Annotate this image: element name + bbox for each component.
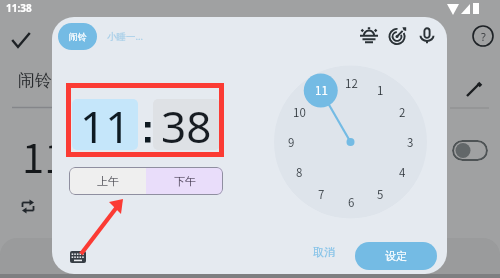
staticText: 5 — [377, 186, 384, 203]
button[interactable]: 1 — [368, 80, 392, 100]
button[interactable]: Sunrise alarm — [357, 25, 381, 49]
button[interactable]: Edit — [464, 80, 484, 100]
staticText: 11:38 — [22, 127, 122, 185]
staticText: 下午 — [174, 174, 196, 188]
button[interactable]: 11 — [72, 99, 138, 150]
button[interactable]: 10 — [287, 102, 311, 122]
staticText: ? — [481, 29, 486, 44]
button[interactable]: 11 — [309, 80, 333, 100]
button[interactable]: 取消 — [304, 239, 344, 265]
button[interactable]: 8 — [287, 162, 311, 182]
staticText: 3 — [407, 134, 414, 151]
button[interactable]: 7 — [309, 184, 333, 204]
button[interactable]: 2 — [390, 102, 414, 122]
staticText: 4 — [399, 164, 406, 181]
staticText: 11 — [80, 99, 131, 147]
button[interactable]: 38 — [153, 99, 220, 150]
staticText: 7 — [318, 186, 325, 203]
button[interactable]: 3 — [398, 132, 422, 152]
staticText: 小睡一… — [107, 30, 144, 43]
button[interactable]: Help — [472, 25, 494, 47]
staticText: 2 — [399, 104, 406, 121]
button[interactable]: 9 — [279, 132, 303, 152]
staticText: 11 — [315, 82, 328, 99]
staticText: 设定 — [385, 249, 407, 263]
button[interactable]: 小睡一… — [102, 23, 148, 50]
staticText: 12 — [345, 75, 358, 92]
staticText: 8 — [296, 164, 303, 181]
button[interactable]: 6 — [339, 192, 363, 212]
staticText: 9 — [288, 134, 295, 151]
staticText: 11:38 — [6, 1, 32, 15]
staticText: 10 — [293, 104, 306, 121]
button[interactable]: Smart alarm — [386, 24, 410, 48]
button[interactable]: 闹铃 — [58, 23, 97, 50]
button[interactable]: 5 — [368, 184, 392, 204]
button[interactable]: Toggle — [452, 140, 488, 161]
staticText: 1 — [377, 82, 384, 99]
button[interactable]: Confirm — [8, 28, 34, 54]
button[interactable]: 4 — [390, 162, 414, 182]
staticText: 38 — [161, 99, 212, 147]
staticText: 闹铃设定 — [18, 70, 86, 91]
button[interactable]: 下午 — [146, 167, 223, 195]
button[interactable]: Voice input — [415, 24, 439, 48]
button[interactable]: 设定 — [355, 242, 437, 270]
button[interactable]: Repeat — [19, 198, 37, 216]
staticText: 6 — [348, 194, 355, 211]
staticText: 取消 — [313, 245, 335, 259]
staticText: 上午 — [97, 174, 119, 188]
button[interactable]: 上午 — [69, 167, 146, 195]
button[interactable]: Keyboard input — [70, 251, 86, 263]
staticText: 闹铃 — [69, 31, 87, 42]
button[interactable]: 12 — [339, 73, 363, 93]
